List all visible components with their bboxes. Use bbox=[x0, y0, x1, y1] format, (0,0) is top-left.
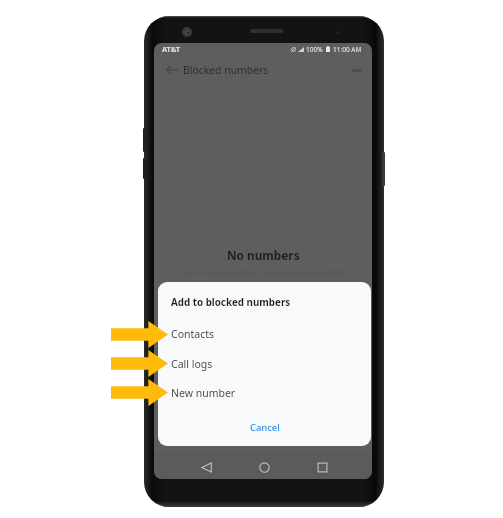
button[interactable]: Home bbox=[253, 456, 275, 479]
button[interactable]: Cancel bbox=[238, 417, 292, 438]
button[interactable]: Contacts bbox=[158, 319, 371, 349]
staticText: Contacts bbox=[171, 327, 215, 341]
staticText: 100% bbox=[306, 45, 323, 54]
button[interactable]: More options bbox=[347, 61, 365, 79]
staticText: No numbers bbox=[227, 247, 300, 263]
staticText: 11:00 AM bbox=[333, 45, 362, 54]
staticText: Add to blocked numbers bbox=[171, 296, 291, 309]
button[interactable]: Back bbox=[195, 456, 217, 479]
staticText: Call logs bbox=[171, 357, 213, 371]
button[interactable]: Navigate up bbox=[163, 61, 181, 79]
staticText: New number bbox=[171, 386, 236, 400]
staticText: Blocked numbers bbox=[183, 63, 269, 77]
staticText: Cancel bbox=[250, 421, 280, 434]
button[interactable]: Recent apps bbox=[311, 456, 333, 479]
button[interactable]: Call logs bbox=[158, 349, 371, 379]
button[interactable]: New number bbox=[158, 378, 371, 408]
staticText: AT&T bbox=[162, 44, 181, 54]
